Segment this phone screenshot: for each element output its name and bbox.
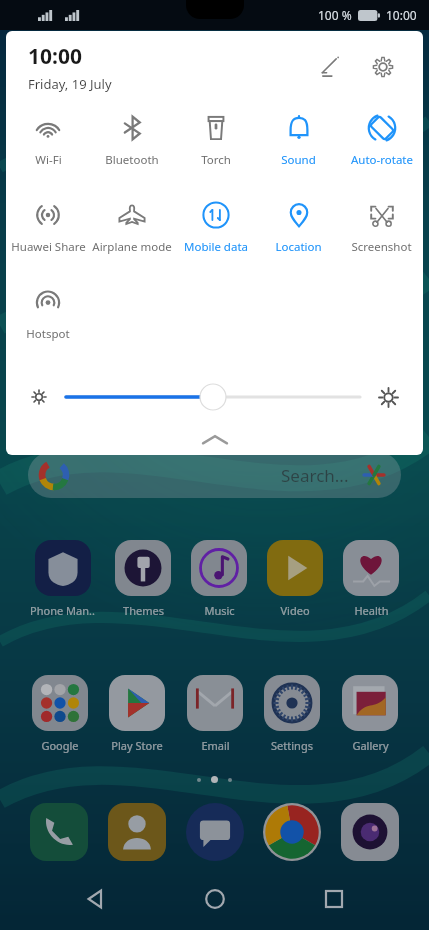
staticText: Search... — [281, 464, 349, 487]
staticText: Gallery — [352, 738, 389, 753]
button[interactable] — [108, 803, 166, 861]
button[interactable] — [30, 803, 88, 861]
button[interactable]: Screenshot — [340, 194, 423, 255]
button[interactable] — [341, 803, 399, 861]
button[interactable]: Brightness — [66, 382, 360, 412]
staticText: Video — [280, 603, 310, 618]
staticText: Play Store — [111, 738, 163, 753]
staticText: Health — [354, 603, 389, 618]
staticText: Sound — [281, 152, 316, 168]
staticText: Bluetooth — [105, 152, 159, 168]
button[interactable]: Home — [191, 875, 239, 923]
staticText: Auto-rotate — [351, 152, 413, 168]
staticText: Airplane mode — [92, 239, 172, 255]
staticText: 10:00 — [386, 7, 417, 23]
button[interactable]: Hotspot — [6, 281, 89, 342]
staticText: Email — [201, 738, 230, 753]
button[interactable]: Torch — [174, 107, 257, 168]
button[interactable]: Wi-Fi — [6, 107, 90, 168]
staticText: Wi-Fi — [35, 152, 62, 168]
button[interactable]: Edit — [307, 45, 351, 89]
staticText: Phone Man.. — [30, 603, 95, 618]
button[interactable]: Health — [343, 540, 399, 618]
staticText: Settings — [271, 738, 313, 753]
staticText: 100 % — [318, 7, 352, 23]
button[interactable]: Gallery — [342, 675, 398, 753]
button[interactable]: Auto-rotate — [340, 107, 423, 168]
button[interactable]: Collapse — [6, 425, 423, 455]
button[interactable] — [263, 803, 321, 861]
button[interactable]: Email — [187, 675, 243, 753]
button[interactable] — [186, 803, 244, 861]
button[interactable]: Google — [32, 675, 88, 753]
staticText: Location — [275, 239, 322, 255]
button[interactable]: Search... — [28, 452, 401, 498]
staticText: Screenshot — [351, 239, 412, 255]
button[interactable]: Recents — [310, 875, 358, 923]
button[interactable]: Mobile data — [174, 194, 257, 255]
staticText: 10:00 — [28, 42, 82, 71]
staticText: Torch — [201, 152, 231, 168]
button[interactable]: Huawei Share — [6, 194, 90, 255]
staticText: Google — [41, 738, 79, 753]
button[interactable]: Sound — [257, 107, 340, 168]
button[interactable]: Settings — [361, 45, 405, 89]
staticText: Music — [204, 603, 235, 618]
button[interactable]: Play Store — [109, 675, 165, 753]
staticText: Hotspot — [26, 326, 70, 342]
staticText: Huawei Share — [11, 239, 86, 255]
staticText: Friday, 19 July — [28, 75, 112, 93]
button[interactable]: Music — [191, 540, 247, 618]
staticText: Themes — [123, 603, 164, 618]
button[interactable]: Bluetooth — [90, 107, 174, 168]
button[interactable]: Phone Man.. — [30, 540, 95, 618]
button[interactable]: Back — [71, 875, 119, 923]
button[interactable]: Video — [267, 540, 323, 618]
button[interactable]: Themes — [115, 540, 171, 618]
button[interactable]: Settings — [264, 675, 320, 753]
button[interactable]: Location — [257, 194, 340, 255]
staticText: Mobile data — [184, 239, 248, 255]
button[interactable]: Airplane mode — [90, 194, 174, 255]
